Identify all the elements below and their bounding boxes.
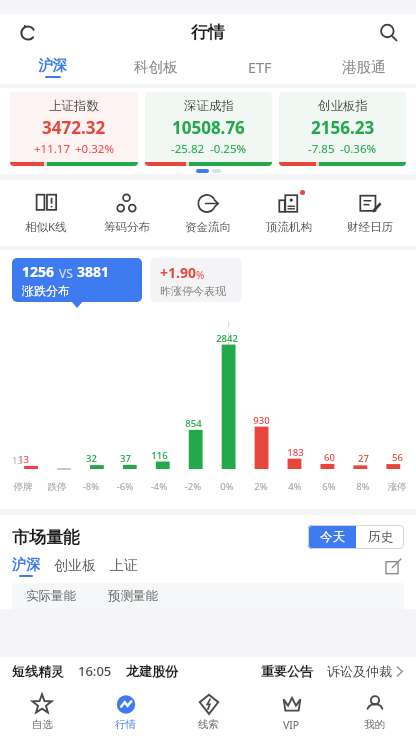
staticText: +11.17 [34, 141, 70, 157]
button[interactable]: +1.90 [150, 258, 242, 302]
staticText: 跌停 [40, 481, 74, 493]
staticText: 停牌 [6, 481, 40, 493]
button[interactable]: 我的 [333, 685, 416, 739]
staticText: -0.25% [210, 141, 247, 157]
button[interactable]: 上证 [110, 557, 138, 575]
staticText: +0.32% [75, 141, 114, 157]
staticText: 深证成指 [184, 98, 234, 114]
staticText: 沪深 [12, 556, 40, 574]
staticText: 财经日历 [347, 220, 393, 234]
button[interactable]: 创业板指 [279, 92, 406, 166]
button[interactable]: 历史 [356, 525, 404, 549]
button[interactable]: 港股通 [312, 50, 416, 84]
button[interactable]: 沪深 [12, 556, 40, 577]
staticText: -8% [74, 480, 108, 493]
staticText: 昨涨停今表现 [160, 284, 226, 298]
staticText: 筹码分布 [104, 220, 150, 234]
staticText: 116 [151, 449, 168, 462]
staticText: 预测量能 [108, 588, 158, 604]
button[interactable]: Night mode [10, 14, 46, 50]
staticText: 854 [185, 417, 202, 430]
button[interactable]: ETF [208, 50, 312, 84]
staticText: 32 [86, 452, 97, 465]
button[interactable]: 上证指数 [10, 92, 138, 166]
staticText: 60 [324, 451, 335, 464]
staticText: -2% [176, 480, 210, 493]
staticText: 13 [18, 453, 29, 466]
staticText: VIP [283, 718, 300, 732]
button[interactable]: 1256 [12, 258, 142, 302]
staticText: 27 [358, 452, 369, 465]
staticText: 沪深 [38, 56, 67, 74]
staticText: 重要公告 [261, 663, 313, 679]
staticText: 资金流向 [185, 220, 231, 234]
staticText: 10508.76 [172, 116, 245, 139]
staticText: -4% [142, 480, 176, 493]
staticText: % [196, 268, 205, 282]
staticText: 历史 [368, 529, 393, 545]
staticText: 56 [392, 451, 403, 464]
staticText: 创业板指 [318, 98, 368, 114]
staticText: 今天 [320, 529, 345, 545]
staticText: 6% [312, 480, 346, 493]
staticText: 2842 [216, 332, 238, 345]
button[interactable]: 短线精灵 [0, 657, 416, 685]
button[interactable]: 科创板 [104, 50, 208, 84]
staticText: 1256 [22, 262, 55, 281]
staticText: -6% [108, 480, 142, 493]
staticText: 实际量能 [26, 588, 76, 604]
staticText: 2% [244, 480, 278, 493]
staticText: 上证指数 [49, 98, 99, 114]
button[interactable]: VIP [250, 685, 333, 739]
staticText: 相似K线 [25, 219, 67, 235]
staticText: 3881 [77, 262, 110, 281]
button[interactable]: 自选 [0, 685, 84, 739]
staticText: 930 [253, 414, 270, 427]
button[interactable]: 筹码分布 [86, 180, 167, 246]
staticText: 市场量能 [12, 527, 80, 548]
staticText: 2156.23 [311, 116, 375, 139]
staticText: 行情 [115, 718, 136, 731]
staticText: 8% [346, 480, 380, 493]
staticText: 涨跌分布 [22, 283, 70, 298]
staticText: 短线精灵 [12, 663, 64, 679]
staticText: 诉讼及仲裁 [327, 663, 392, 679]
staticText: 线索 [198, 718, 219, 731]
button[interactable]: 线索 [167, 685, 250, 739]
staticText: -0.36% [340, 141, 377, 157]
button[interactable]: 行情 [84, 685, 167, 739]
staticText: 3472.32 [42, 116, 106, 139]
staticText: ETF [248, 57, 272, 77]
staticText: 行情 [191, 22, 225, 43]
staticText: 13 [12, 454, 23, 467]
staticText: 科创板 [134, 58, 178, 76]
button[interactable]: 顶流机构 [248, 180, 329, 246]
staticText: 37 [120, 452, 131, 465]
staticText: 自选 [32, 718, 53, 731]
staticText: -7.85 [308, 141, 335, 157]
staticText: 16:05 [78, 662, 112, 680]
staticText: 港股通 [342, 58, 386, 76]
button[interactable]: 今天 [308, 525, 356, 549]
button[interactable]: 沪深 [0, 50, 104, 84]
button[interactable]: 财经日历 [329, 180, 410, 246]
staticText: 我的 [364, 718, 385, 731]
staticText: 龙建股份 [126, 663, 178, 679]
button[interactable]: 资金流向 [167, 180, 248, 246]
button[interactable]: Open full screen [382, 555, 404, 577]
staticText: VS [59, 265, 73, 281]
staticText: +1.90 [160, 263, 196, 282]
button[interactable]: 创业板 [54, 557, 96, 575]
button[interactable]: 深证成指 [145, 92, 272, 166]
staticText: 183 [287, 446, 304, 459]
button[interactable]: Search [370, 14, 406, 50]
staticText: -25.82 [171, 141, 205, 157]
staticText: 涨停 [380, 481, 414, 493]
staticText: 4% [278, 480, 312, 493]
staticText: 顶流机构 [266, 220, 312, 234]
staticText: 0% [210, 480, 244, 493]
button[interactable]: 相似K线 [6, 180, 86, 246]
